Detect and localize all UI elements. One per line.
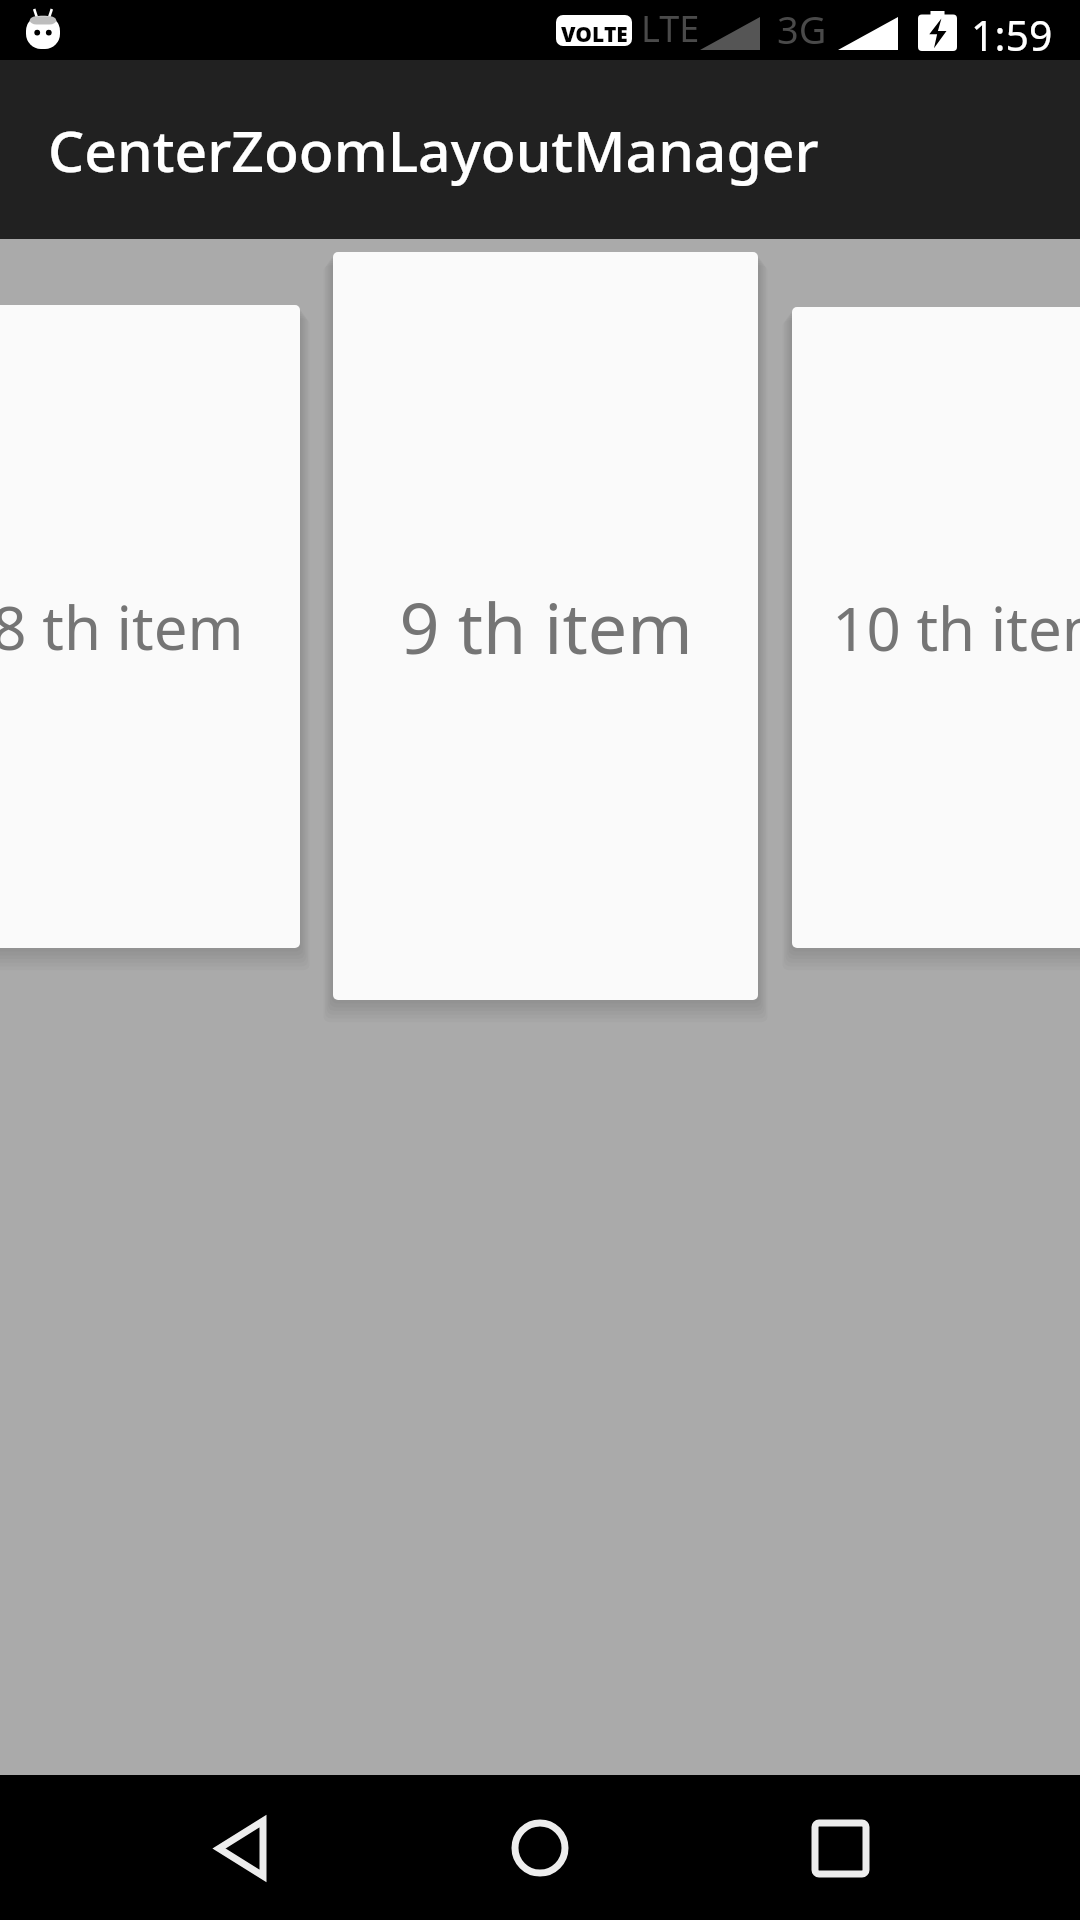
staticText: 9 th item bbox=[399, 579, 693, 674]
staticText: 10 th item bbox=[832, 587, 1080, 669]
button[interactable]: 9 th item bbox=[333, 252, 758, 1000]
staticText: 3G bbox=[777, 3, 827, 55]
button[interactable]: 10 th item bbox=[792, 307, 1080, 948]
staticText: LTE bbox=[641, 4, 700, 53]
staticText: CenterZoomLayoutManager bbox=[48, 111, 819, 189]
staticText: 1:59 bbox=[971, 7, 1053, 63]
staticText: 8 th item bbox=[0, 586, 244, 668]
button[interactable]: Home bbox=[480, 1775, 600, 1920]
staticText: VOLTE bbox=[561, 20, 628, 49]
button[interactable]: 8 th item bbox=[0, 305, 300, 948]
button[interactable]: Back bbox=[180, 1775, 300, 1920]
button[interactable]: Recent apps bbox=[781, 1775, 901, 1920]
